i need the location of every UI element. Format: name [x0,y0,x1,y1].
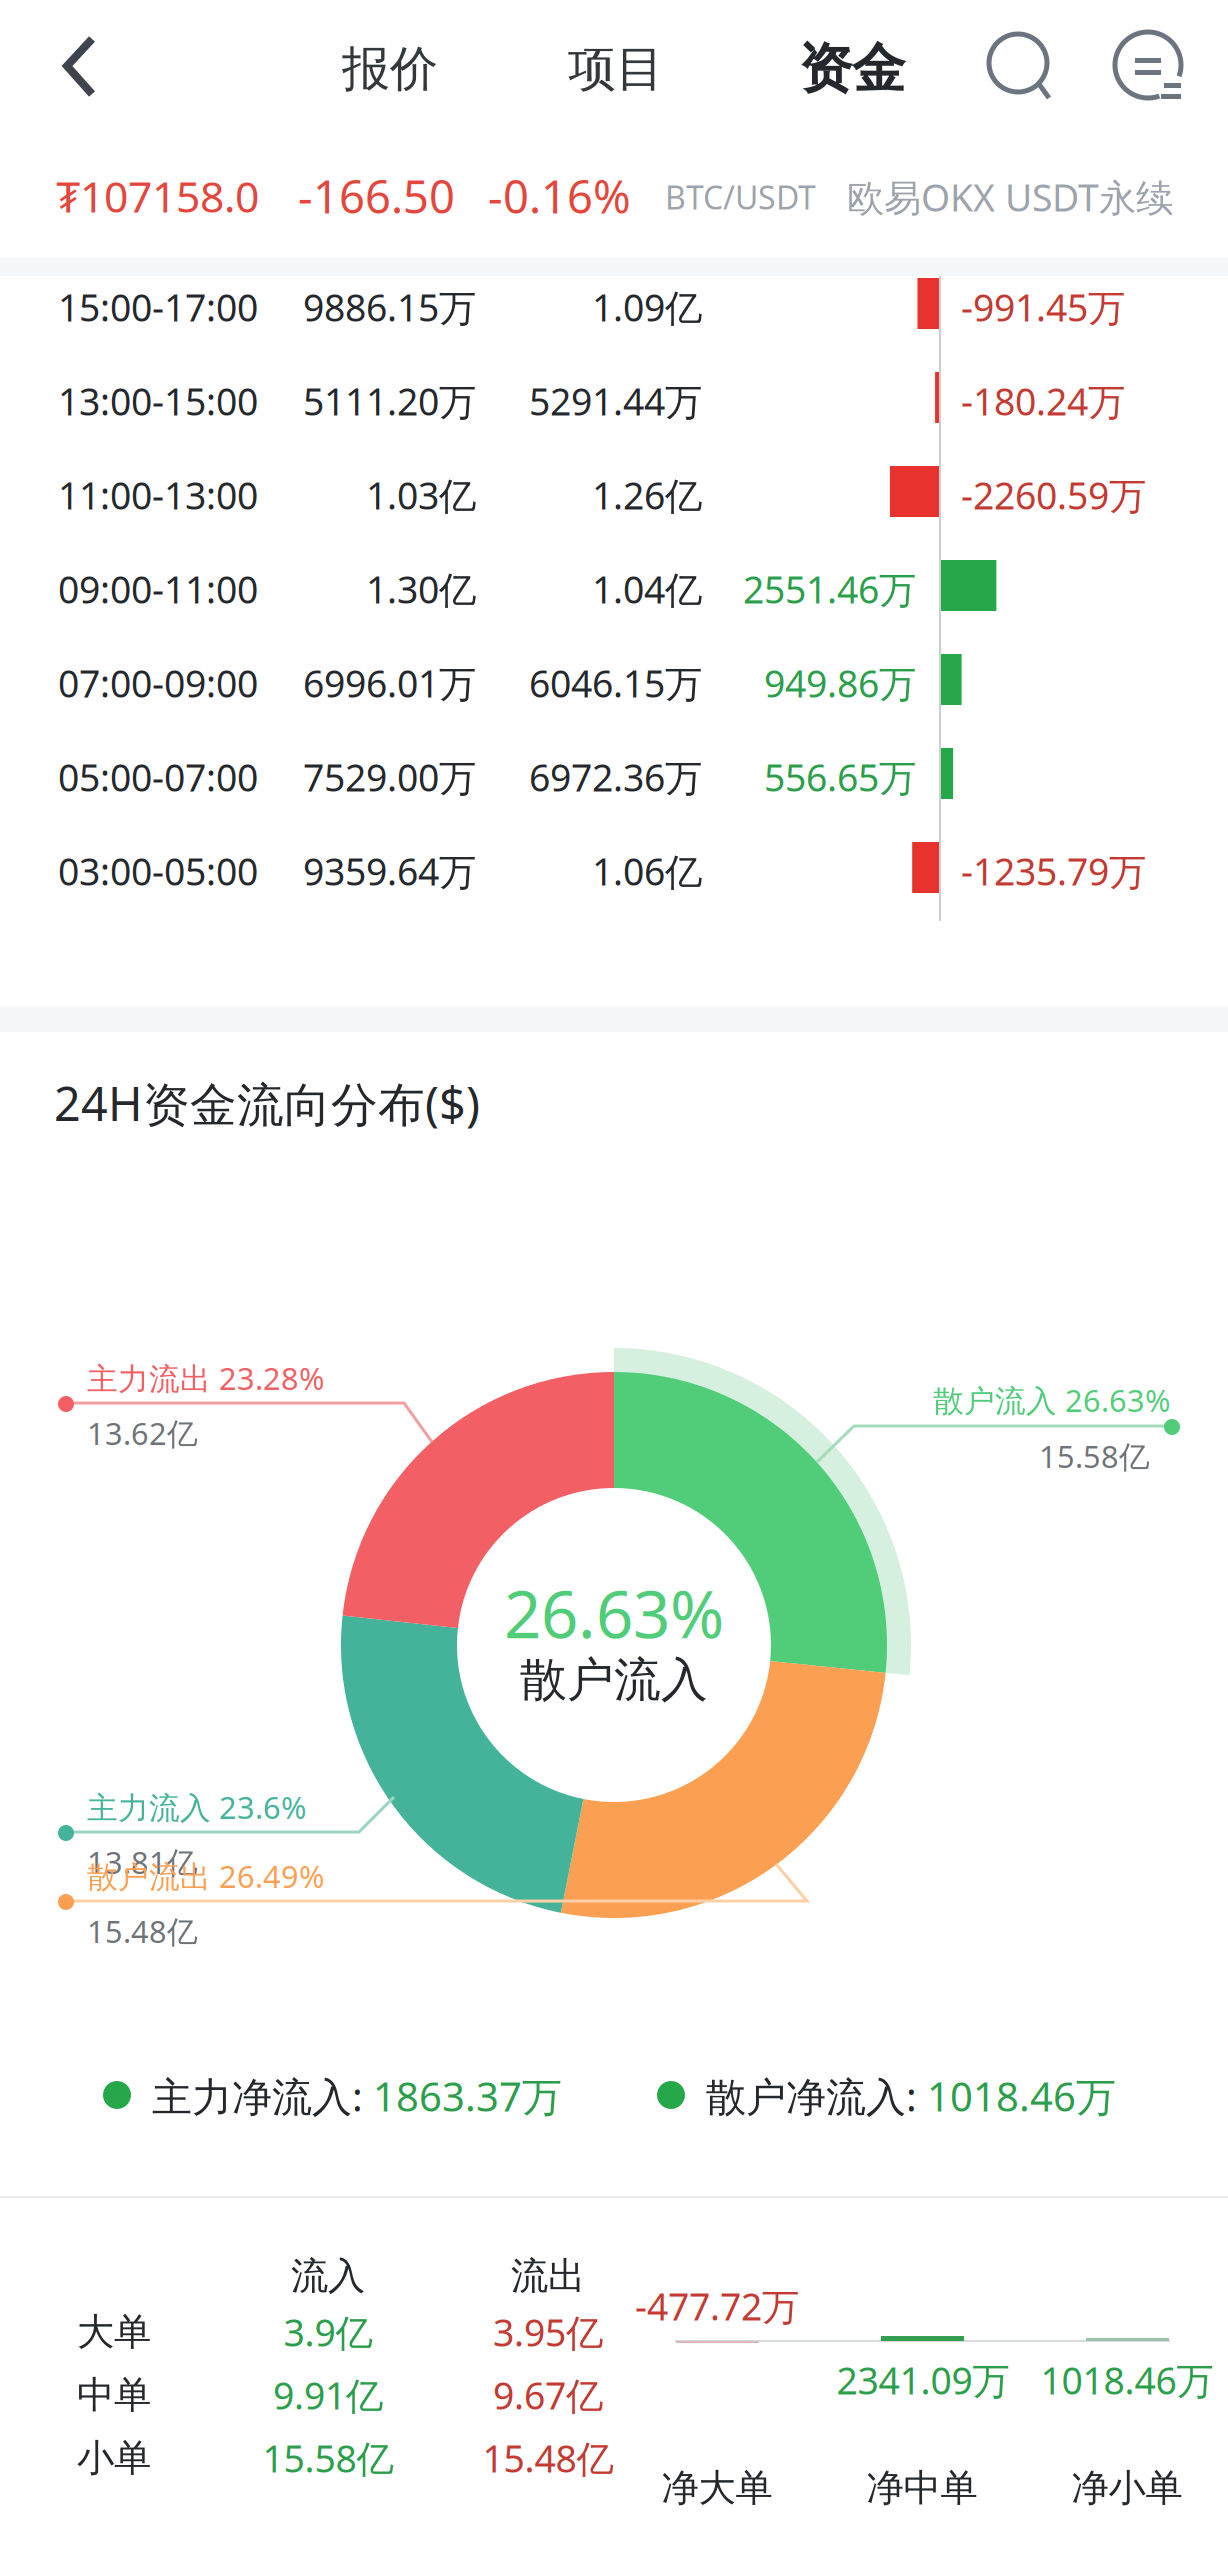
staticText: 散户净流入: [706,2069,927,2122]
staticText: 6972.36万 [529,752,702,802]
staticText: 净小单 [1071,2465,1182,2511]
staticText: 1.09亿 [592,282,702,332]
staticText: 11:00-13:00 [58,470,258,520]
staticText: -180.24万 [961,376,1125,426]
staticText: 5111.20万 [303,376,476,426]
staticText: ₮107158.0 [56,168,259,224]
button[interactable]: 资金 [760,26,944,112]
staticText: 1.04亿 [592,564,702,614]
staticText: 欧易OKX USDT永续 [847,172,1173,222]
staticText: 净大单 [661,2465,772,2511]
button[interactable]: 报价 [309,30,471,108]
staticText: 13.62亿 [87,1413,198,1453]
staticText: 1018.46万 [1040,2355,1213,2405]
staticText: 3.9亿 [283,2307,372,2357]
staticText: 主力流出 23.28% [87,1358,324,1398]
staticText: -1235.79万 [961,846,1146,896]
staticText: 1863.37万 [373,2069,562,2122]
staticText: 6046.15万 [529,658,702,708]
button[interactable]: Filter [1112,14,1198,110]
staticText: 报价 [342,39,438,98]
staticText: 流出 [511,2253,585,2299]
staticText: -991.45万 [961,282,1125,332]
staticText: 1018.46万 [927,2069,1116,2122]
button[interactable]: 项目 [535,30,697,108]
staticText: 中单 [77,2372,151,2418]
staticText: 24H资金流向分布($) [54,1072,480,1134]
staticText: -0.16% [488,166,631,226]
staticText: 大单 [77,2309,151,2355]
staticText: 15.48亿 [87,1911,198,1951]
staticText: 05:00-07:00 [58,752,258,802]
staticText: 散户流入 26.63% [933,1380,1170,1420]
staticText: BTC/USDT [665,176,816,218]
staticText: -477.72万 [635,2281,799,2331]
staticText: 15:00-17:00 [58,282,258,332]
staticText: 项目 [568,39,664,98]
button[interactable]: Search [978,20,1062,110]
button[interactable]: Back [40,22,124,112]
staticText: 资金 [799,36,905,102]
staticText: 2551.46万 [743,564,916,614]
staticText: 主力净流入: [152,2069,373,2122]
staticText: -2260.59万 [961,470,1146,520]
staticText: 1.06亿 [592,846,702,896]
staticText: 9359.64万 [303,846,476,896]
staticText: 小单 [77,2435,151,2481]
staticText: 7529.00万 [303,752,476,802]
staticText: 1.26亿 [592,470,702,520]
staticText: 1.03亿 [366,470,476,520]
staticText: 13:00-15:00 [58,376,258,426]
staticText: 556.65万 [764,752,916,802]
staticText: 15.58亿 [262,2433,393,2483]
staticText: 6996.01万 [303,658,476,708]
staticText: 3.95亿 [493,2307,603,2357]
staticText: 流入 [291,2253,365,2299]
staticText: 9.67亿 [493,2370,603,2420]
staticText: 15.58亿 [1039,1436,1150,1476]
staticText: 主力流入 23.6% [87,1787,306,1827]
staticText: -166.50 [298,166,455,226]
staticText: 09:00-11:00 [58,564,258,614]
staticText: 净中单 [866,2465,977,2511]
staticText: 2341.09万 [836,2355,1009,2405]
staticText: 15.48亿 [482,2433,613,2483]
staticText: 散户流入 [520,1651,708,1709]
staticText: 03:00-05:00 [58,846,258,896]
staticText: 9.91亿 [273,2370,383,2420]
staticText: 07:00-09:00 [58,658,258,708]
staticText: 9886.15万 [303,282,476,332]
staticText: 13.81亿 [87,1842,198,1882]
staticText: 949.86万 [764,658,916,708]
staticText: 散户流出 26.49% [87,1856,324,1896]
staticText: 1.30亿 [366,564,476,614]
staticText: 26.63% [504,1570,724,1656]
staticText: 5291.44万 [529,376,702,426]
